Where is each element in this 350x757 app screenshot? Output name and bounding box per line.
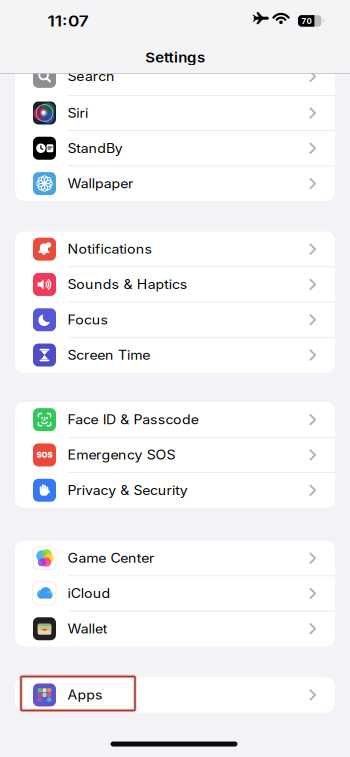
button[interactable]: Privacy & Security (15, 473, 335, 508)
button[interactable]: StandBy (15, 131, 335, 166)
button[interactable]: Face ID & Passcode (15, 402, 335, 437)
staticText: Game Center (67, 550, 146, 566)
staticText: 11:07 (51, 12, 85, 30)
staticText: Privacy & Security (67, 482, 176, 498)
button[interactable]: Notifications (15, 231, 335, 267)
staticText: 70 (302, 16, 312, 26)
button[interactable]: iCloud (15, 576, 335, 611)
staticText: StandBy (67, 140, 117, 156)
button[interactable]: Wallet (15, 611, 335, 646)
button[interactable]: Screen Time (15, 337, 335, 373)
staticText: Siri (67, 105, 86, 121)
staticText: Sounds & Haptics (67, 277, 176, 292)
staticText: Face ID & Passcode (67, 412, 186, 427)
staticText: Emergency SOS (67, 447, 165, 463)
staticText: Wallpaper (67, 176, 127, 191)
button[interactable]: Apps (15, 677, 335, 713)
staticText: Wallet (67, 621, 103, 636)
button[interactable]: Wallpaper (15, 166, 335, 201)
button[interactable]: Search (15, 59, 335, 94)
button[interactable]: SOS (15, 437, 335, 473)
button[interactable]: Siri (15, 95, 335, 131)
staticText: Apps (67, 687, 99, 703)
staticText: Settings (148, 49, 202, 66)
staticText: iCloud (67, 586, 106, 601)
staticText: Search (67, 69, 110, 84)
button[interactable]: Game Center (15, 540, 335, 576)
staticText: Notifications (67, 241, 144, 257)
staticText: Focus (67, 312, 104, 327)
staticText: Screen Time (67, 347, 142, 363)
button[interactable]: Focus (15, 302, 335, 337)
staticText: SOS (36, 450, 52, 460)
button[interactable]: Sounds & Haptics (15, 267, 335, 302)
